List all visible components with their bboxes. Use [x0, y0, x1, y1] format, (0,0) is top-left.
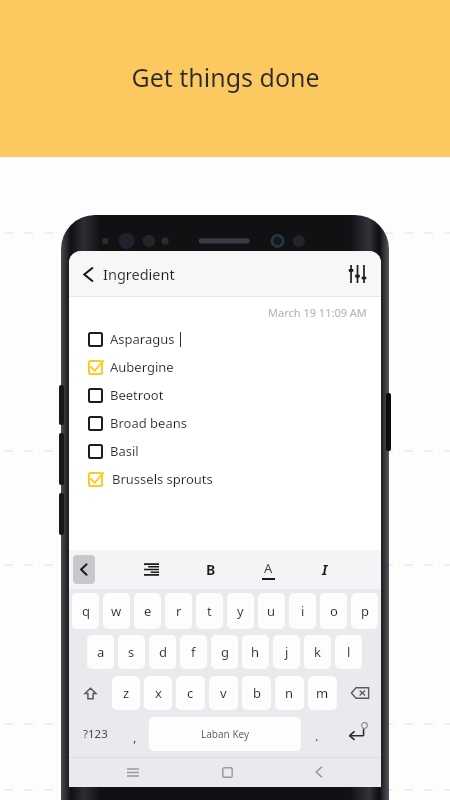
staticText: z [123, 684, 130, 702]
button[interactable]: Basil [69, 437, 381, 465]
staticText: a [97, 643, 105, 661]
staticText: s [128, 643, 135, 661]
staticText: B [206, 560, 216, 579]
button[interactable]: Brussels sprouts [69, 465, 381, 493]
button[interactable]: e [134, 593, 161, 629]
button[interactable]: z [112, 676, 140, 710]
button[interactable]: Beetroot [69, 381, 381, 409]
staticText: q [82, 602, 90, 620]
staticText: Get things done [131, 60, 320, 94]
button[interactable]: o [320, 593, 347, 629]
staticText: Aubergine [110, 358, 174, 376]
button[interactable]: l [335, 635, 362, 669]
button[interactable]: v [209, 676, 238, 710]
button[interactable]: Settings [334, 251, 381, 297]
staticText: n [285, 684, 294, 702]
button[interactable]: Enter [332, 715, 380, 753]
button[interactable]: Laban Key [149, 717, 301, 751]
staticText: . [315, 727, 319, 745]
staticText: Ingredient [103, 264, 175, 284]
staticText: r [176, 602, 182, 620]
button[interactable]: Asparagus [69, 325, 381, 353]
button[interactable]: Back [307, 758, 331, 786]
staticText: I [322, 560, 328, 579]
staticText: Brussels sprouts [112, 470, 213, 488]
button[interactable]: i [289, 593, 316, 629]
staticText: o [330, 602, 338, 620]
staticText: g [221, 643, 229, 661]
staticText: t [207, 602, 212, 620]
staticText: f [191, 643, 196, 661]
button[interactable]: f [180, 635, 207, 669]
button[interactable]: t [196, 593, 223, 629]
button[interactable]: Aubergine [69, 353, 381, 381]
staticText: e [144, 602, 152, 620]
staticText: w [111, 602, 122, 620]
button[interactable]: x [144, 676, 172, 710]
button[interactable]: Hide toolbar [73, 555, 95, 584]
staticText: m [316, 684, 329, 702]
staticText: Asparagus [110, 330, 175, 348]
staticText: d [159, 643, 167, 661]
button[interactable]: Broad beans [69, 409, 381, 437]
button[interactable]: m [308, 676, 337, 710]
staticText: ?123 [83, 726, 108, 742]
button[interactable]: A [256, 559, 281, 580]
button[interactable]: y [227, 593, 254, 629]
button[interactable]: q [72, 593, 99, 629]
button[interactable]: h [242, 635, 269, 669]
button[interactable]: Shift [70, 674, 110, 712]
staticText: p [361, 602, 369, 620]
button[interactable]: b [242, 676, 271, 710]
button[interactable]: c [176, 676, 205, 710]
button[interactable]: d [149, 635, 176, 669]
button[interactable]: Backspace [339, 674, 380, 712]
staticText: v [220, 684, 227, 702]
staticText: Broad beans [110, 414, 187, 432]
staticText: i [301, 602, 305, 620]
staticText: y [237, 602, 244, 620]
staticText: March 19 11:09 AM [268, 305, 367, 320]
staticText: Basil [110, 442, 139, 460]
button[interactable]: Home [214, 759, 241, 786]
button[interactable]: p [351, 593, 378, 629]
button[interactable]: , [121, 715, 149, 753]
button[interactable]: a [87, 635, 114, 669]
button[interactable]: u [258, 593, 285, 629]
button[interactable]: Align [138, 557, 165, 582]
staticText: u [267, 602, 276, 620]
staticText: Laban Key [201, 727, 250, 741]
staticText: k [314, 643, 321, 661]
staticText: A [264, 559, 273, 577]
button[interactable]: Ingredient [69, 256, 185, 292]
button[interactable]: j [273, 635, 300, 669]
button[interactable]: ?123 [70, 715, 121, 753]
button[interactable]: B [200, 554, 222, 585]
staticText: c [187, 684, 194, 702]
button[interactable]: I [316, 554, 334, 585]
button[interactable]: Recents [119, 760, 147, 785]
button[interactable]: . [301, 715, 332, 753]
staticText: x [155, 684, 162, 702]
button[interactable]: n [275, 676, 304, 710]
staticText: j [285, 643, 289, 661]
button[interactable]: g [211, 635, 238, 669]
staticText: Beetroot [110, 386, 164, 404]
staticText: l [347, 643, 351, 661]
staticText: , [133, 728, 137, 746]
button[interactable]: s [118, 635, 145, 669]
staticText: b [253, 684, 261, 702]
button[interactable]: w [103, 593, 130, 629]
button[interactable]: r [165, 593, 192, 629]
button[interactable]: k [304, 635, 331, 669]
staticText: h [251, 643, 260, 661]
